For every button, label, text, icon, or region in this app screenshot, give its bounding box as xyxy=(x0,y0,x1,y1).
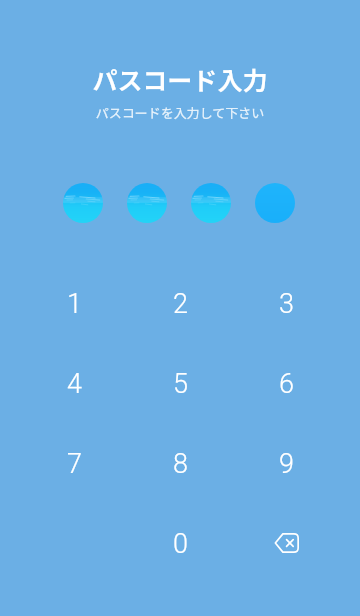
button[interactable]: 9 xyxy=(233,424,339,504)
staticText: 1 xyxy=(67,288,82,320)
staticText: 3 xyxy=(279,288,294,320)
staticText: 7 xyxy=(67,448,82,480)
staticText: 5 xyxy=(173,368,188,400)
staticText: 2 xyxy=(173,288,188,320)
button[interactable]: Backspace xyxy=(233,504,339,584)
button[interactable]: 3 xyxy=(233,264,339,344)
staticText: パスコードを入力して下さい xyxy=(0,103,360,122)
button[interactable]: 4 xyxy=(21,344,127,424)
button[interactable]: 6 xyxy=(233,344,339,424)
button[interactable]: 1 xyxy=(21,264,127,344)
staticText: 9 xyxy=(279,448,294,480)
staticText: パスコード入力 xyxy=(0,61,360,97)
staticText: 0 xyxy=(173,528,188,560)
button[interactable]: 2 xyxy=(127,264,233,344)
button[interactable]: 0 xyxy=(127,504,233,584)
staticText: 4 xyxy=(67,368,82,400)
button[interactable]: 7 xyxy=(21,424,127,504)
button[interactable]: 8 xyxy=(127,424,233,504)
staticText: 6 xyxy=(279,368,294,400)
button[interactable]: 5 xyxy=(127,344,233,424)
staticText: 8 xyxy=(173,448,188,480)
